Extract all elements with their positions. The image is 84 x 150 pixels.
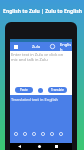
staticText: Translated text in English [11, 97, 59, 102]
button[interactable]: Swap languages [49, 43, 56, 50]
button[interactable]: Speak [11, 129, 20, 138]
button[interactable]: Translate [48, 87, 67, 93]
button[interactable]: Copy [38, 129, 47, 138]
button[interactable]: Close [56, 129, 65, 138]
button[interactable]: Favourite [47, 129, 56, 138]
staticText: Enter text in Zulu or click on mic and t… [11, 52, 64, 62]
staticText: English to Zulu | Zulu to English [3, 8, 82, 15]
staticText: English [60, 42, 72, 51]
staticText: Translate [51, 88, 64, 92]
staticText: Paste [20, 88, 28, 92]
button[interactable]: Menu [12, 43, 19, 50]
button[interactable]: Clear [29, 129, 38, 138]
button[interactable]: Share [20, 129, 29, 138]
button[interactable]: Paste [15, 87, 33, 93]
button[interactable]: Microphone [38, 88, 43, 93]
staticText: Zulu [32, 44, 41, 49]
